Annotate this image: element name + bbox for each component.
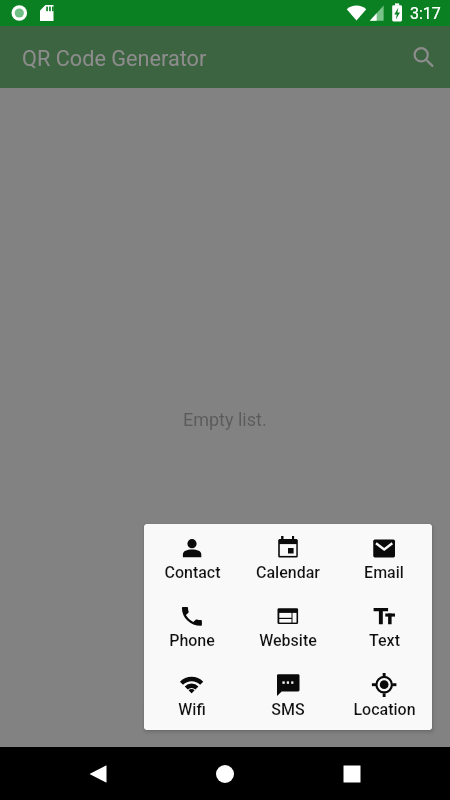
button[interactable]: Phone xyxy=(144,593,240,662)
button[interactable]: Email xyxy=(336,524,432,593)
button[interactable]: Wifi xyxy=(144,661,240,730)
staticText: 3:17 xyxy=(410,4,441,23)
button[interactable]: SMS xyxy=(240,661,336,730)
button[interactable]: Location xyxy=(336,661,432,730)
staticText: SMS xyxy=(271,700,305,719)
button[interactable]: Contact xyxy=(144,524,240,593)
staticText: Location xyxy=(353,700,416,719)
staticText: Empty list. xyxy=(183,409,267,430)
staticText: Calendar xyxy=(256,563,320,582)
button[interactable]: Home xyxy=(199,747,251,800)
staticText: Wifi xyxy=(178,700,206,719)
staticText: Text xyxy=(369,631,400,650)
staticText: Phone xyxy=(169,631,215,650)
button[interactable]: Text xyxy=(336,593,432,662)
button[interactable]: Website xyxy=(240,593,336,662)
button[interactable]: Search xyxy=(396,33,444,81)
staticText: QR Code Generator xyxy=(22,46,207,71)
staticText: Email xyxy=(364,563,404,582)
button[interactable]: Calendar xyxy=(240,524,336,593)
staticText: Website xyxy=(259,631,317,650)
button[interactable]: Back xyxy=(72,747,124,800)
staticText: Contact xyxy=(164,563,221,582)
button[interactable]: Recent apps xyxy=(326,747,378,800)
